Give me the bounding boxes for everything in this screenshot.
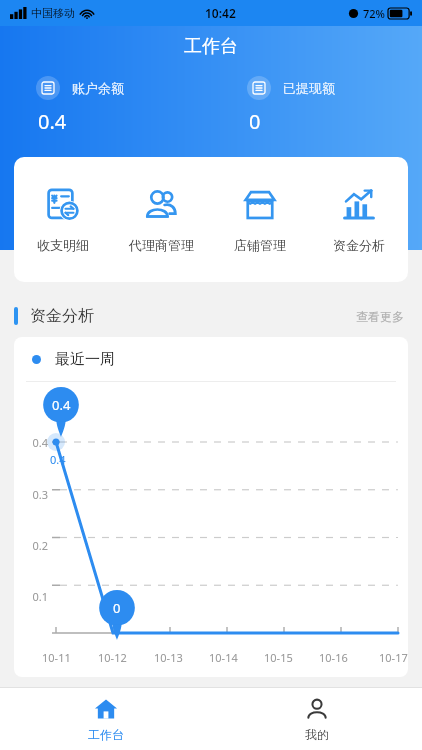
button[interactable]: 店铺管理: [210, 157, 309, 282]
button[interactable]: 资金分析: [309, 157, 408, 282]
button[interactable]: 代理商管理: [112, 157, 210, 282]
staticText: 0.4: [32, 435, 48, 450]
staticText: 收支明细: [37, 237, 89, 253]
staticText: 查看更多: [356, 309, 404, 324]
staticText: 0: [249, 108, 261, 135]
staticText: 10-12: [98, 650, 127, 665]
staticText: 0.1: [32, 589, 48, 604]
staticText: 10:42: [205, 5, 236, 21]
button[interactable]: 收支明细: [14, 157, 112, 282]
staticText: 0.4: [52, 396, 71, 414]
staticText: 工作台: [184, 35, 238, 58]
staticText: 资金分析: [333, 237, 385, 253]
staticText: 10-11: [42, 650, 71, 665]
staticText: 账户余额: [72, 80, 124, 96]
staticText: 工作台: [88, 727, 124, 742]
button[interactable]: 我的: [211, 688, 422, 750]
staticText: 最近一周: [55, 350, 115, 369]
staticText: 0.4: [50, 452, 66, 467]
staticText: 10-13: [154, 650, 183, 665]
staticText: 10-15: [264, 650, 293, 665]
staticText: 店铺管理: [234, 237, 286, 253]
staticText: 72%: [363, 6, 385, 21]
staticText: 10-14: [209, 650, 238, 665]
button[interactable]: 查看更多: [352, 305, 408, 328]
staticText: 已提现额: [283, 80, 335, 96]
staticText: 我的: [305, 727, 329, 742]
button[interactable]: 工作台: [0, 688, 211, 750]
staticText: 0: [113, 599, 121, 617]
staticText: 0.2: [32, 538, 48, 553]
staticText: 代理商管理: [129, 237, 194, 253]
staticText: 10-16: [319, 650, 348, 665]
staticText: 0.3: [32, 487, 48, 502]
staticText: 资金分析: [30, 306, 94, 326]
staticText: 中国移动: [31, 6, 75, 20]
staticText: 10-17: [379, 650, 408, 665]
staticText: 0.4: [38, 108, 67, 135]
